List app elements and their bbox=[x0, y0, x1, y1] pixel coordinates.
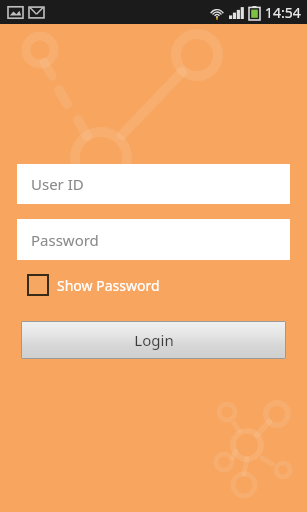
button[interactable]: Login bbox=[22, 322, 285, 358]
staticText: Show Password bbox=[57, 276, 160, 295]
button[interactable]: Show Password bbox=[25, 271, 162, 299]
staticText: User ID bbox=[31, 174, 84, 194]
staticText: Login bbox=[134, 330, 174, 350]
button[interactable]: User ID bbox=[17, 164, 290, 204]
staticText: 14:54 bbox=[265, 3, 301, 22]
staticText: Password bbox=[31, 230, 99, 250]
button[interactable]: Password bbox=[17, 219, 290, 260]
